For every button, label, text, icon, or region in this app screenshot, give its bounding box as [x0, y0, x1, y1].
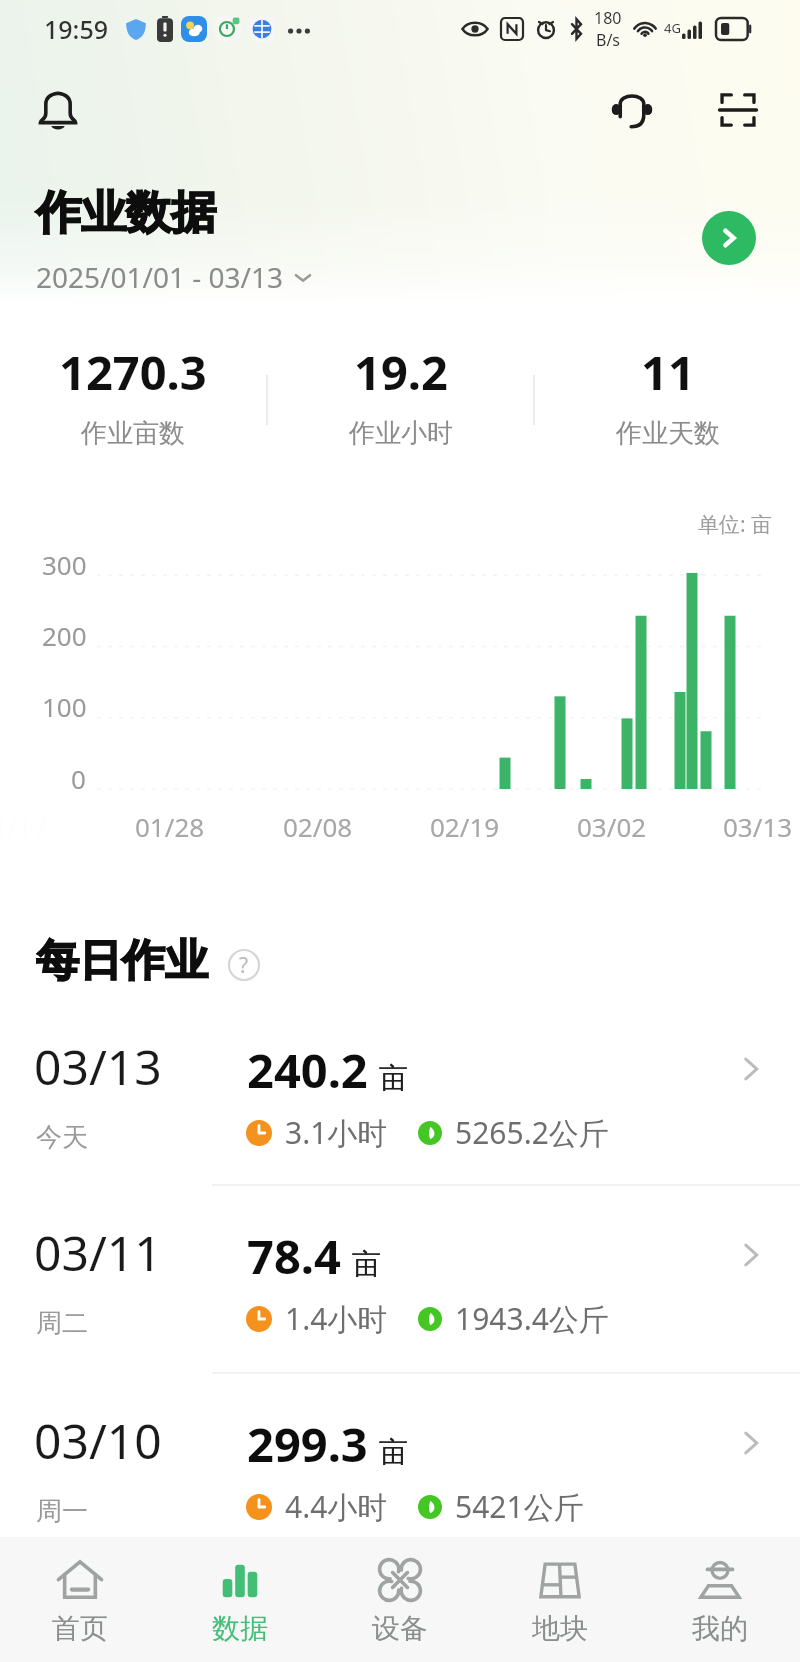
- button[interactable]: 03/11: [0, 1186, 800, 1370]
- button[interactable]: 我的: [640, 1554, 800, 1646]
- button[interactable]: Customer support: [602, 80, 662, 140]
- staticText: 亩: [352, 1246, 381, 1283]
- staticText: 亩: [379, 1434, 408, 1471]
- staticText: 0: [71, 761, 86, 796]
- staticText: 作业亩数: [81, 417, 185, 450]
- staticText: 今天: [36, 1121, 88, 1154]
- staticText: 作业天数: [616, 417, 720, 450]
- button[interactable]: Next: [702, 211, 756, 265]
- staticText: 299.3: [247, 1412, 368, 1476]
- staticText: 1.4小时: [285, 1298, 388, 1339]
- staticText: 作业数据: [36, 185, 216, 242]
- staticText: 11: [641, 340, 695, 404]
- staticText: B/s: [596, 29, 621, 51]
- staticText: 03/10: [34, 1408, 162, 1473]
- staticText: 180: [594, 7, 622, 29]
- staticText: ?: [239, 951, 249, 980]
- staticText: 亩: [352, 1246, 381, 1283]
- staticText: 我的: [692, 1611, 748, 1646]
- staticText: 19.2: [354, 340, 448, 404]
- button[interactable]: 设备: [320, 1554, 480, 1646]
- staticText: 78.4: [247, 1224, 341, 1288]
- staticText: 240.2: [247, 1038, 368, 1102]
- staticText: 亩: [379, 1060, 408, 1097]
- staticText: 设备: [372, 1611, 428, 1646]
- button[interactable]: 地块: [480, 1554, 640, 1646]
- staticText: 200: [42, 618, 87, 653]
- staticText: 周二: [36, 1307, 88, 1340]
- button[interactable]: 2025/01/01 - 03/13: [36, 258, 314, 296]
- staticText: 4G: [664, 19, 681, 37]
- staticText: 5265.2公斤: [455, 1112, 609, 1153]
- staticText: 19:59: [44, 12, 109, 46]
- staticText: 1943.4公斤: [455, 1298, 609, 1339]
- staticText: 每日作业: [36, 934, 208, 988]
- staticText: 100: [42, 689, 87, 724]
- staticText: 亩: [379, 1434, 408, 1471]
- staticText: 03/13: [723, 809, 793, 844]
- staticText: 02/08: [283, 809, 353, 844]
- staticText: 5421公斤: [455, 1486, 584, 1527]
- button[interactable]: Notifications: [28, 80, 88, 140]
- staticText: 4.4小时: [285, 1486, 388, 1527]
- staticText: 01/28: [135, 809, 205, 844]
- staticText: 亩: [379, 1060, 408, 1097]
- staticText: 03/11: [34, 1220, 162, 1285]
- staticText: 数据: [212, 1611, 268, 1646]
- staticText: 3.1小时: [285, 1112, 388, 1153]
- staticText: 2025/01/01 - 03/13: [36, 258, 284, 296]
- staticText: 周一: [36, 1495, 88, 1528]
- staticText: 地块: [532, 1611, 588, 1646]
- staticText: 作业小时: [349, 417, 453, 450]
- button[interactable]: 03/13: [0, 1000, 800, 1184]
- button[interactable]: 03/10: [0, 1374, 800, 1558]
- staticText: 02/19: [430, 809, 500, 844]
- button[interactable]: 首页: [0, 1554, 160, 1646]
- staticText: 作业数据: [36, 185, 216, 242]
- staticText: 1270.3: [59, 340, 207, 404]
- staticText: 03/13: [34, 1034, 162, 1099]
- button[interactable]: Scan: [708, 80, 768, 140]
- staticText: 03/02: [577, 809, 647, 844]
- button[interactable]: 数据: [160, 1554, 320, 1646]
- staticText: 首页: [52, 1611, 108, 1646]
- staticText: 每日作业: [36, 934, 208, 988]
- staticText: 单位: 亩: [698, 510, 773, 539]
- button[interactable]: Help: [228, 949, 260, 981]
- staticText: 300: [42, 547, 87, 582]
